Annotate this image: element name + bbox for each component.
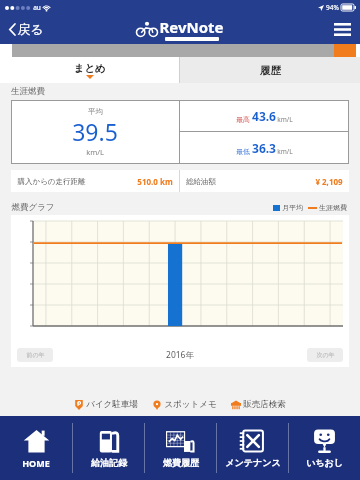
- staticText: 43.6: [252, 108, 276, 124]
- staticText: まとめ: [73, 62, 106, 75]
- staticText: 履歴: [260, 64, 281, 77]
- button[interactable]: 履歴: [180, 57, 360, 83]
- button[interactable]: スポットメモ: [150, 397, 219, 412]
- staticText: 最低: [236, 147, 250, 156]
- button[interactable]: 最高: [180, 100, 349, 131]
- staticText: 生涯燃費: [11, 86, 45, 97]
- staticText: 39.5: [72, 116, 118, 147]
- button[interactable]: 総給油額: [186, 170, 343, 192]
- button[interactable]: [12, 44, 356, 57]
- staticText: au: [33, 3, 41, 12]
- button[interactable]: 燃費履歴: [145, 416, 216, 480]
- button[interactable]: バイク駐車場: [72, 397, 140, 412]
- staticText: 前の年: [26, 351, 45, 359]
- staticText: 最高: [236, 115, 250, 124]
- staticText: ¥ 2,109: [315, 176, 343, 187]
- staticText: 生涯燃費: [319, 203, 347, 212]
- staticText: 購入からの走行距離: [17, 177, 86, 186]
- button[interactable]: メンテナンス: [217, 416, 288, 480]
- staticText: スポットメモ: [164, 399, 217, 410]
- staticText: 次の年: [316, 351, 335, 359]
- button[interactable]: Next year: [307, 348, 343, 362]
- staticText: km/L: [86, 147, 104, 157]
- button[interactable]: 戻る: [6, 18, 47, 40]
- staticText: RevNote: [159, 17, 224, 37]
- staticText: 月平均: [282, 203, 303, 212]
- button[interactable]: いちおし: [289, 416, 360, 480]
- staticText: km/L: [277, 147, 293, 156]
- button[interactable]: HOME: [0, 416, 72, 480]
- staticText: 94%: [326, 3, 339, 12]
- staticText: km/L: [277, 115, 293, 124]
- staticText: いちおし: [306, 457, 343, 468]
- staticText: 平均: [88, 107, 103, 116]
- staticText: 販売店検索: [243, 399, 286, 410]
- staticText: 510.0 km: [137, 176, 173, 187]
- button[interactable]: 最低: [180, 132, 349, 164]
- button[interactable]: Menu: [331, 20, 354, 39]
- staticText: 総給油額: [186, 177, 216, 186]
- staticText: HOME: [22, 457, 50, 469]
- button[interactable]: 平均: [11, 100, 179, 164]
- staticText: 燃費グラフ: [11, 202, 55, 213]
- staticText: 36.3: [252, 140, 276, 156]
- button[interactable]: Previous year: [17, 348, 53, 362]
- staticText: バイク駐車場: [86, 399, 138, 410]
- button[interactable]: 給油記録: [73, 416, 144, 480]
- button[interactable]: 販売店検索: [229, 397, 288, 412]
- staticText: メンテナンス: [225, 457, 281, 468]
- staticText: 燃費履歴: [163, 457, 199, 468]
- button[interactable]: 購入からの走行距離: [17, 170, 173, 192]
- staticText: 給油記録: [91, 457, 127, 468]
- staticText: 戻る: [17, 21, 44, 37]
- button[interactable]: まとめ: [0, 57, 179, 83]
- staticText: 2016年: [166, 349, 194, 361]
